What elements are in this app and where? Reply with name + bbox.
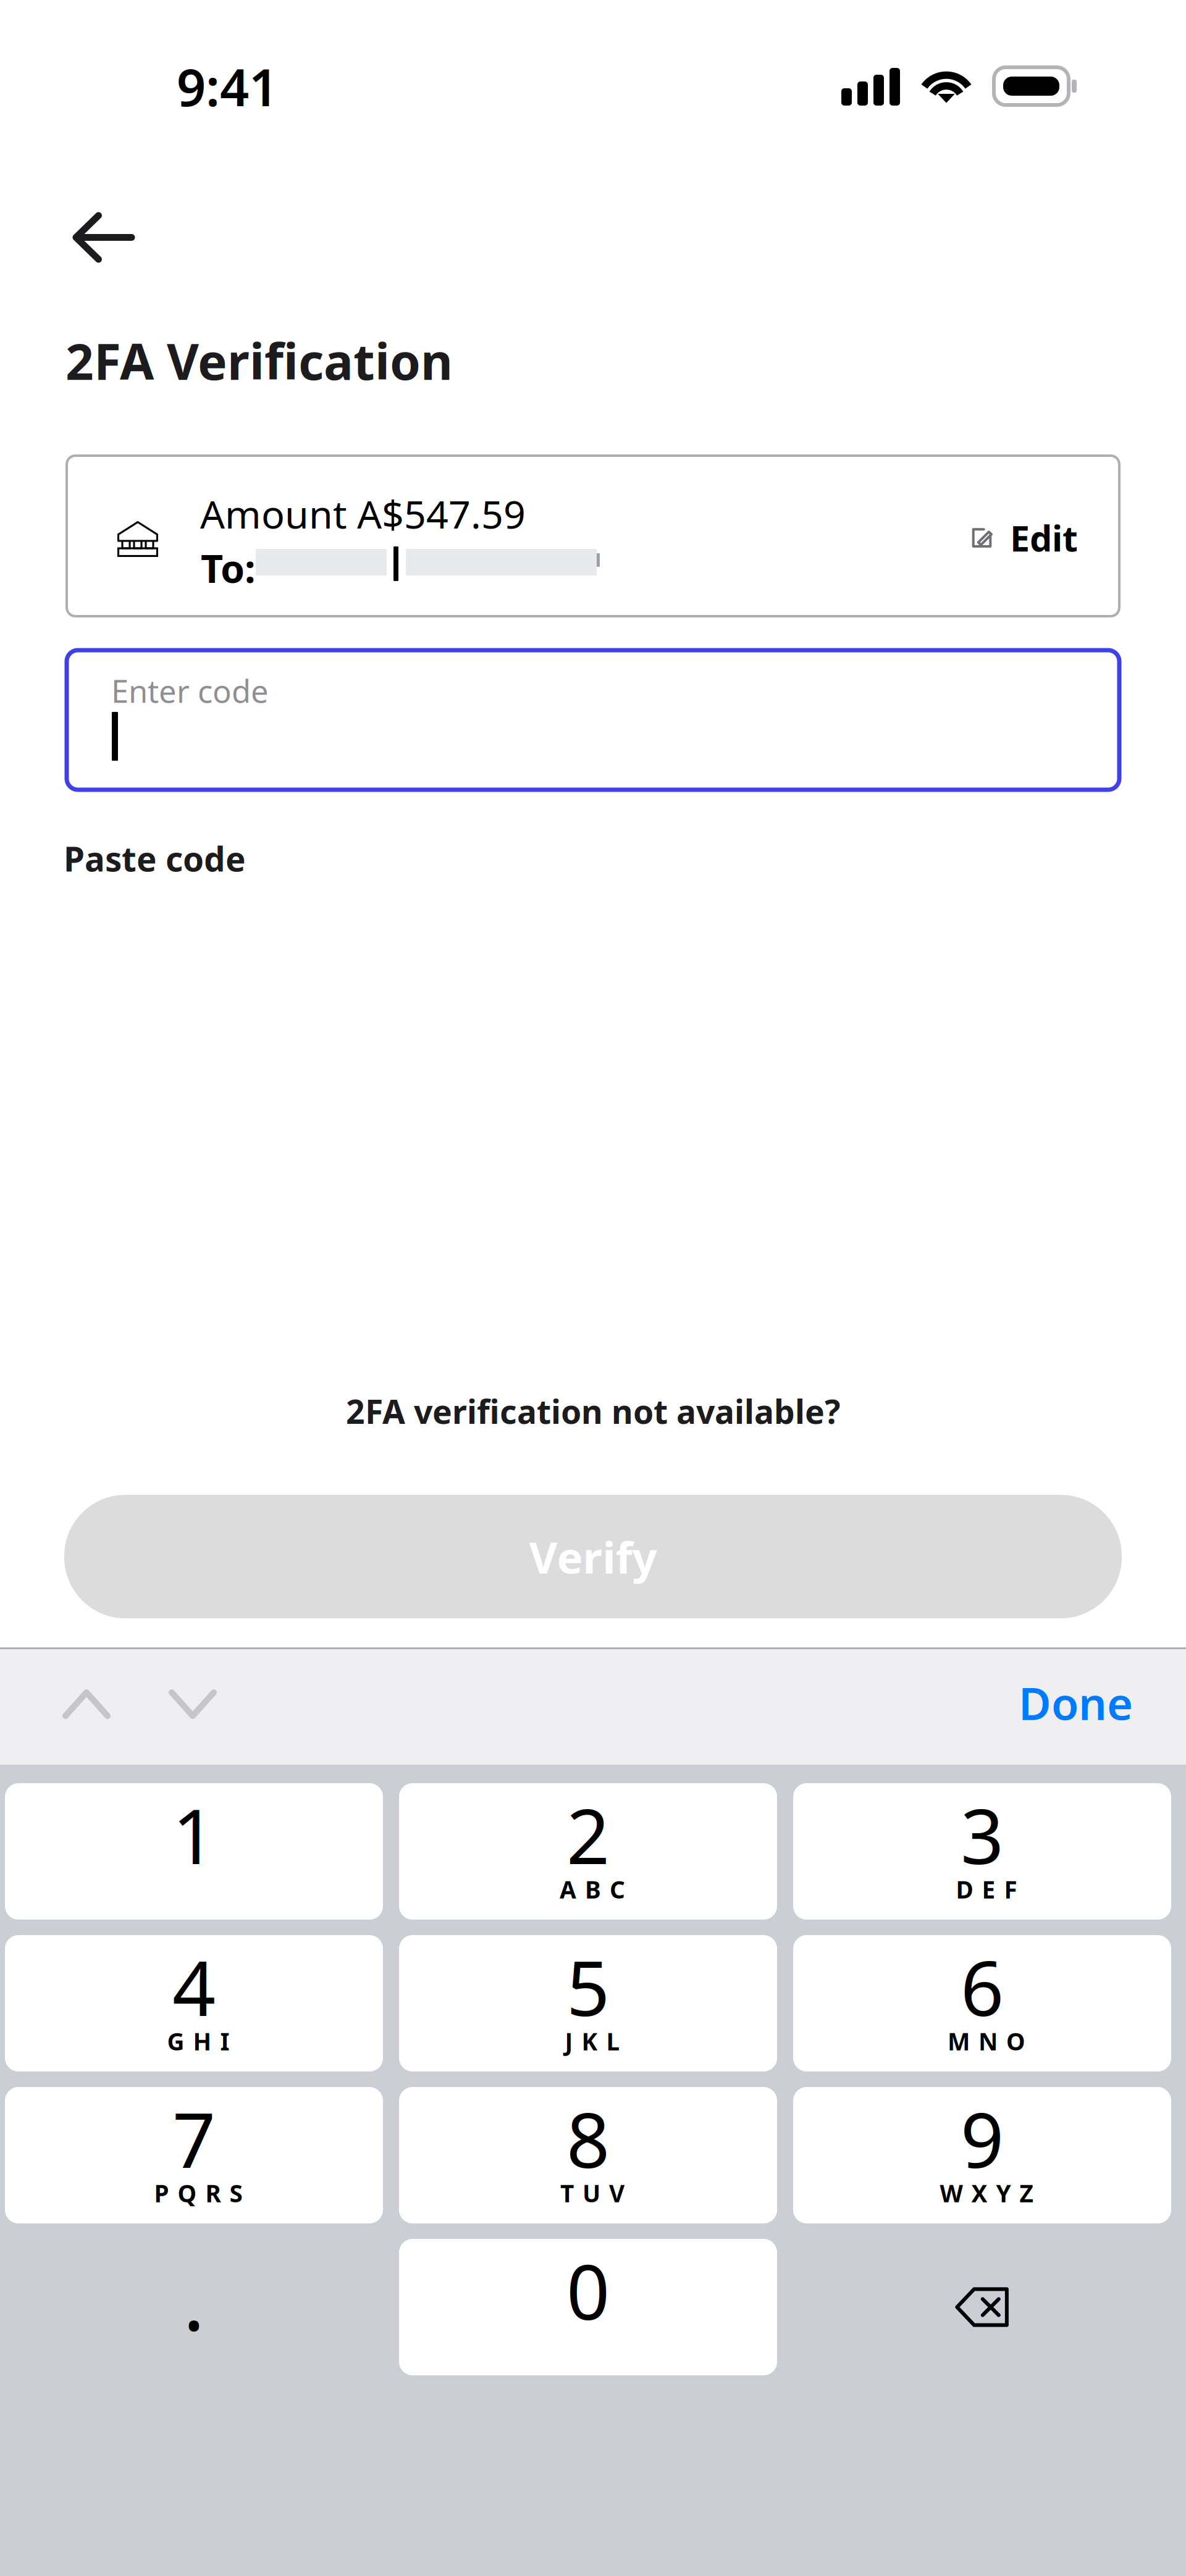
button[interactable]: 8 (399, 2087, 777, 2223)
button[interactable]: 2 (399, 1783, 777, 1920)
button[interactable]: Verify (64, 1495, 1122, 1618)
button[interactable]: 0 (399, 2239, 777, 2375)
button[interactable]: 2FA verification not available? (0, 1383, 1186, 1439)
button[interactable]: 3 (793, 1783, 1171, 1920)
button[interactable]: 6 (793, 1935, 1171, 2072)
staticText: 1 (172, 1784, 216, 1885)
staticText: 2FA Verification (65, 328, 453, 393)
staticText: GHI (167, 2025, 229, 2057)
button[interactable]: Paste code (46, 825, 263, 892)
staticText: Verify (529, 1528, 657, 1586)
staticText: . (183, 2244, 205, 2353)
button[interactable]: 9 (793, 2087, 1171, 2223)
button[interactable]: 7 (5, 2087, 383, 2223)
staticText: Edit (1010, 514, 1078, 561)
staticText: ABC (560, 1873, 625, 1905)
button[interactable]: Decimal point (5, 2239, 383, 2375)
button[interactable]: Back (57, 197, 150, 278)
staticText: 4 (172, 1936, 216, 2037)
staticText: Amount A$547.59 (200, 488, 526, 539)
staticText: 7 (172, 2088, 216, 2189)
staticText: 3 (961, 1784, 1004, 1885)
staticText: JKL (565, 2025, 620, 2057)
button[interactable]: Edit (959, 498, 1089, 577)
button[interactable]: Previous field (47, 1673, 126, 1736)
staticText: WXYZ (940, 2177, 1033, 2209)
staticText: PQRS (154, 2177, 242, 2209)
staticText: 5 (566, 1936, 610, 2037)
button[interactable]: Delete (793, 2239, 1171, 2375)
staticText: Enter code (111, 670, 269, 711)
staticText: 6 (961, 1936, 1004, 2037)
staticText: 2FA verification not available? (346, 1389, 840, 1433)
button[interactable]: 5 (399, 1935, 777, 2072)
staticText: TUV (560, 2177, 625, 2209)
button[interactable]: 1 (5, 1783, 383, 1920)
staticText: 9:41 (177, 52, 278, 120)
staticText: 2 (566, 1784, 610, 1885)
staticText: Paste code (64, 836, 246, 881)
staticText: DEF (956, 1873, 1017, 1905)
button[interactable]: Done (994, 1657, 1158, 1748)
staticText: 9 (961, 2088, 1004, 2189)
staticText: 8 (566, 2088, 610, 2189)
button[interactable]: Next field (153, 1673, 232, 1736)
staticText: Done (1019, 1673, 1133, 1732)
button[interactable]: 4 (5, 1935, 383, 2072)
staticText: 0 (566, 2240, 610, 2341)
staticText: To: (201, 542, 256, 593)
staticText: MNO (948, 2025, 1025, 2057)
